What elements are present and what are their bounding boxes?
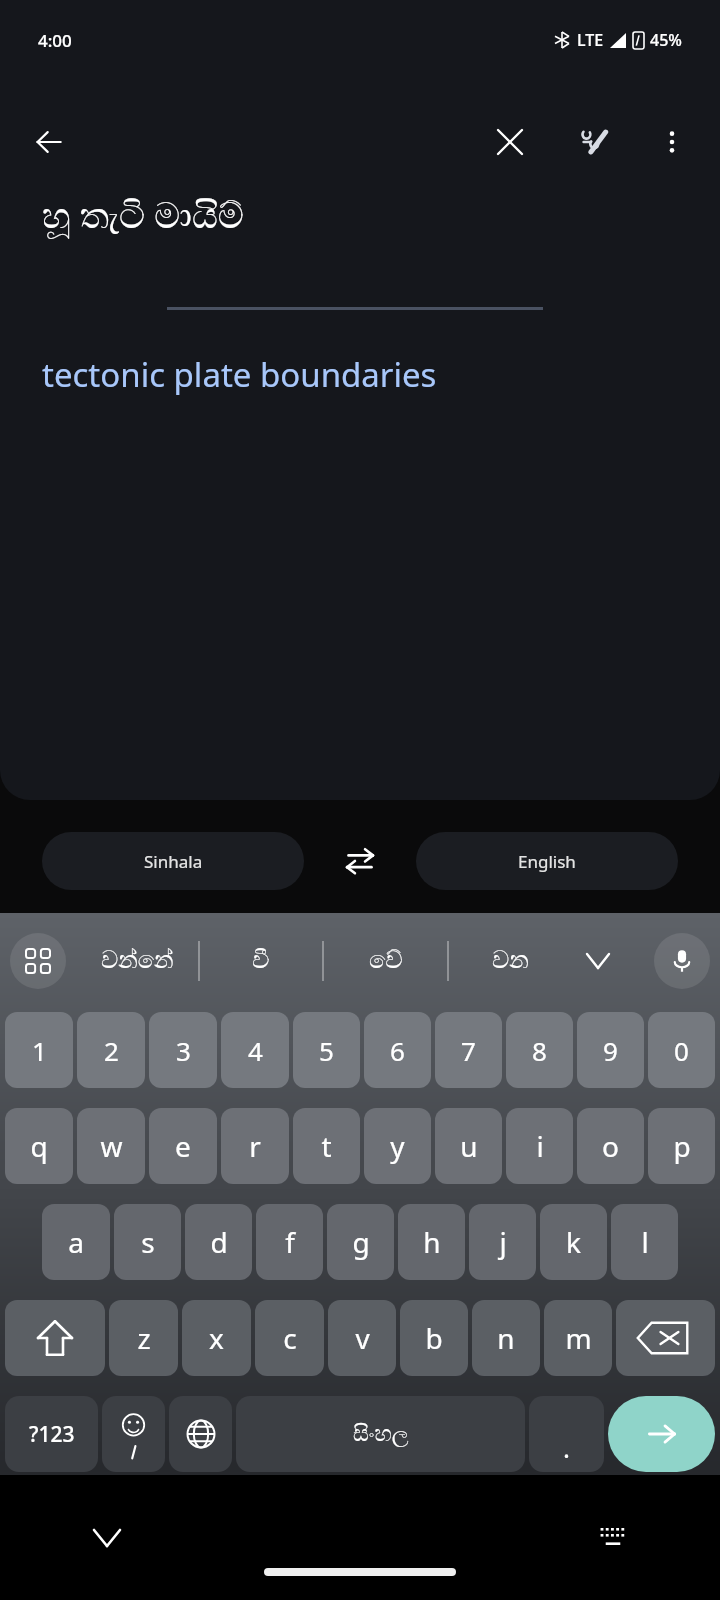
staticText: i (536, 1127, 544, 1165)
button[interactable]: Shift (5, 1300, 105, 1376)
staticText: 0 (674, 1033, 689, 1068)
staticText: n (497, 1319, 515, 1357)
staticText: 8 (532, 1033, 547, 1068)
button[interactable]: Keyboard apps (10, 933, 66, 989)
staticText: tectonic plate boundaries (42, 352, 437, 397)
staticText: m (565, 1319, 592, 1357)
staticText: ?123 (29, 1420, 75, 1449)
button[interactable]: වී (200, 913, 322, 1008)
button[interactable]: Swap languages (304, 832, 416, 890)
staticText: x (209, 1319, 224, 1357)
button[interactable]: 4 (221, 1012, 289, 1088)
button[interactable]: w (77, 1108, 145, 1184)
staticText: 3 (176, 1033, 191, 1068)
button[interactable]: Change language (169, 1396, 232, 1472)
button[interactable]: i (506, 1108, 573, 1184)
button[interactable]: m (544, 1300, 612, 1376)
button[interactable]: 3 (149, 1012, 217, 1088)
button[interactable]: e (149, 1108, 217, 1184)
staticText: h (423, 1223, 441, 1261)
staticText: v (355, 1319, 370, 1357)
button[interactable]: Voice input (654, 933, 710, 989)
staticText: 7 (461, 1033, 476, 1068)
staticText: Sinhala (144, 850, 203, 873)
button[interactable]: 8 (506, 1012, 573, 1088)
button[interactable]: Enter (608, 1396, 715, 1472)
staticText: e (175, 1127, 191, 1165)
staticText: 45% (650, 29, 682, 51)
button[interactable]: English (416, 832, 678, 890)
button[interactable]: h (398, 1204, 465, 1280)
button[interactable]: x (182, 1300, 251, 1376)
staticText: 5 (319, 1033, 334, 1068)
staticText: w (100, 1127, 123, 1165)
staticText: හූ තැටි මායිම් (42, 190, 244, 239)
button[interactable]: o (577, 1108, 644, 1184)
button[interactable]: 5 (293, 1012, 360, 1088)
button[interactable]: Clear (482, 114, 538, 170)
button[interactable]: සිංහල (236, 1396, 525, 1472)
button[interactable]: 1 (5, 1012, 73, 1088)
button[interactable]: t (293, 1108, 360, 1184)
button[interactable]: Hide keyboard (78, 1509, 136, 1567)
button[interactable]: වන්නේ (76, 913, 198, 1008)
staticText: p (673, 1127, 691, 1165)
button[interactable]: b (400, 1300, 468, 1376)
staticText: a (68, 1223, 84, 1261)
staticText: l (641, 1223, 649, 1261)
staticText: 2 (104, 1033, 119, 1068)
button[interactable]: f (256, 1204, 323, 1280)
button[interactable]: c (255, 1300, 324, 1376)
button[interactable]: k (540, 1204, 607, 1280)
button[interactable]: ?123 (5, 1396, 98, 1472)
staticText: English (518, 850, 576, 873)
staticText: b (425, 1319, 443, 1357)
button[interactable]: Emoji (102, 1396, 165, 1472)
button[interactable]: Sinhala (42, 832, 304, 890)
button[interactable]: වන (449, 913, 572, 1008)
staticText: වී (252, 949, 270, 973)
button[interactable]: y (364, 1108, 431, 1184)
button[interactable]: Backspace (616, 1300, 715, 1376)
button[interactable]: . (529, 1396, 604, 1472)
button[interactable]: p (648, 1108, 715, 1184)
staticText: o (602, 1127, 619, 1165)
button[interactable]: r (221, 1108, 289, 1184)
button[interactable]: s (114, 1204, 181, 1280)
staticText: k (566, 1223, 581, 1261)
staticText: z (137, 1319, 151, 1357)
button[interactable]: d (185, 1204, 252, 1280)
button[interactable]: q (5, 1108, 73, 1184)
button[interactable]: u (435, 1108, 502, 1184)
button[interactable]: 0 (648, 1012, 715, 1088)
button[interactable]: 6 (364, 1012, 431, 1088)
button[interactable]: More options (644, 114, 700, 170)
button[interactable]: 2 (77, 1012, 145, 1088)
button[interactable]: Expand suggestions (572, 913, 624, 1008)
button[interactable]: a (42, 1204, 110, 1280)
staticText: s (141, 1223, 155, 1261)
staticText: . (563, 1430, 570, 1465)
button[interactable]: g (327, 1204, 394, 1280)
button[interactable]: v (328, 1300, 396, 1376)
button[interactable]: Back (22, 115, 76, 169)
button[interactable]: Handwriting (566, 114, 622, 170)
staticText: y (390, 1127, 405, 1165)
button[interactable]: j (469, 1204, 536, 1280)
staticText: j (499, 1223, 507, 1261)
button[interactable]: Switch input method (584, 1509, 642, 1567)
staticText: 4 (248, 1033, 263, 1068)
staticText: වන (492, 949, 529, 973)
button[interactable]: z (109, 1300, 178, 1376)
button[interactable]: n (472, 1300, 540, 1376)
staticText: g (352, 1223, 370, 1261)
button[interactable]: l (611, 1204, 678, 1280)
staticText: වේ (369, 949, 403, 973)
button[interactable]: 7 (435, 1012, 502, 1088)
staticText: වන්නේ (101, 949, 174, 973)
button[interactable]: වේ (324, 913, 447, 1008)
button[interactable]: 9 (577, 1012, 644, 1088)
staticText: 4:00 (38, 29, 72, 52)
staticText: r (249, 1127, 261, 1165)
staticText: LTE (577, 29, 604, 51)
